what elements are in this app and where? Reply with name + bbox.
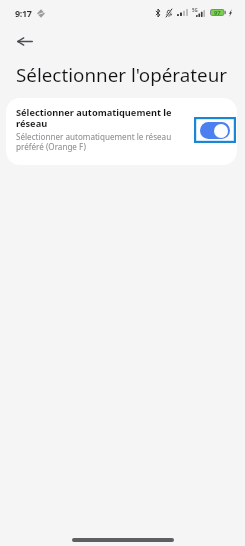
staticText: 5G xyxy=(192,7,198,13)
button[interactable]: Sélectionner automatiquement le réseau xyxy=(194,117,236,143)
button[interactable]: Sélectionner automatiquement le réseau xyxy=(6,98,237,165)
staticText: Sélectionner l'opérateur xyxy=(16,62,228,88)
staticText: Sélectionner automatiquement le réseau p… xyxy=(16,131,189,153)
staticText: 9:17 xyxy=(15,7,32,19)
staticText: Sélectionner automatiquement le réseau xyxy=(16,106,189,130)
button[interactable]: Retour xyxy=(10,26,40,56)
staticText: 97 xyxy=(214,9,221,16)
